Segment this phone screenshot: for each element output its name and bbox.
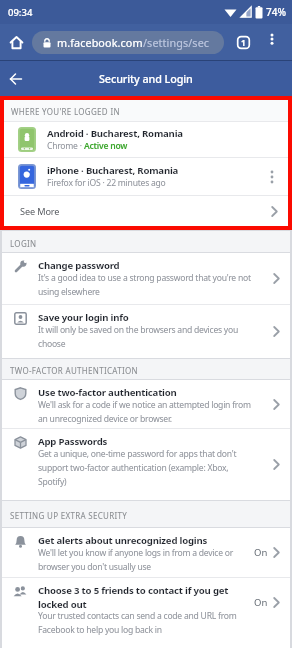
button[interactable] <box>8 71 24 87</box>
button[interactable]: Use two-factor authentication <box>2 380 290 428</box>
staticText: It's a good idea to use a strong passwor… <box>38 272 251 297</box>
staticText: Firefox for iOS · 22 minutes ago <box>47 177 166 189</box>
staticText: Get a unique, one-time password for apps… <box>38 448 237 487</box>
staticText: WHERE YOU'RE LOGGED IN <box>11 106 120 117</box>
staticText: We'll ask for a code if we notice an att… <box>38 399 251 424</box>
button[interactable]: See More <box>4 196 288 226</box>
staticText: Security and Login <box>99 71 193 86</box>
staticText: Get alerts about unrecognized logins <box>38 534 208 547</box>
staticText: /settings/sec <box>143 35 210 50</box>
staticText: SETTING UP EXTRA SECURITY <box>10 510 128 521</box>
staticText: Choose 3 to 5 friends to contact if you … <box>38 584 229 610</box>
button[interactable]: m.facebook.com <box>32 31 224 54</box>
staticText: iPhone · Bucharest, Romania <box>47 164 179 177</box>
staticText: Change password <box>38 259 120 272</box>
button[interactable]: Save your login info <box>2 305 290 358</box>
button[interactable]: Change password <box>2 253 290 304</box>
staticText: TWO-FACTOR AUTHENTICATION <box>10 365 138 376</box>
button[interactable] <box>265 32 279 52</box>
staticText: On <box>254 596 268 609</box>
staticText: 1 <box>241 37 246 48</box>
staticText: Chrome · <box>47 140 84 152</box>
staticText: LOGIN <box>10 238 37 249</box>
staticText: 09:34 <box>8 6 33 19</box>
staticText: Your trusted contacts can send a code an… <box>38 610 237 635</box>
staticText: On <box>254 546 268 559</box>
staticText: m.facebook.com <box>57 35 143 50</box>
staticText: Save your login info <box>38 311 129 324</box>
button[interactable]: iPhone · Bucharest, Romania <box>4 158 288 195</box>
staticText: Android · Bucharest, Romania <box>47 127 183 140</box>
staticText: 74% <box>266 5 286 19</box>
button[interactable] <box>9 35 24 50</box>
button[interactable]: App Passwords <box>2 429 290 500</box>
staticText: Use two-factor authentication <box>38 386 177 399</box>
staticText: We'll let you know if anyone logs in fro… <box>38 547 234 572</box>
staticText: App Passwords <box>38 435 108 448</box>
staticText: See More <box>20 205 60 218</box>
button[interactable]: Android · Bucharest, Romania <box>4 122 288 157</box>
button[interactable]: Choose 3 to 5 friends to contact if you … <box>2 578 290 648</box>
button[interactable]: Get alerts about unrecognized logins <box>2 528 290 577</box>
staticText: It will only be saved on the browsers an… <box>38 324 238 349</box>
staticText: Active now <box>84 140 128 152</box>
button[interactable]: 1 <box>237 36 250 49</box>
